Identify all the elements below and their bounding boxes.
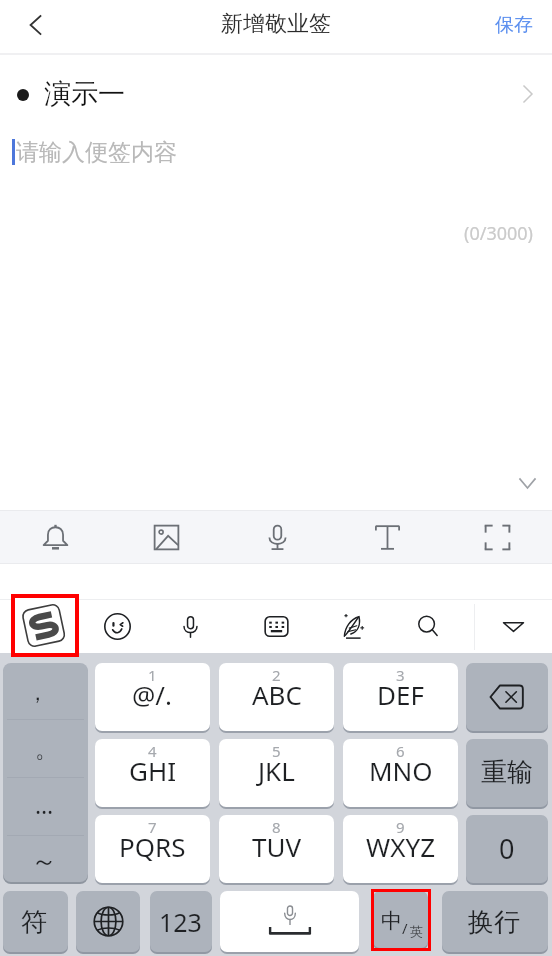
staticText: 演示一 bbox=[44, 77, 125, 111]
staticText: 8 bbox=[272, 817, 281, 837]
staticText: 3 bbox=[396, 665, 405, 685]
staticText: GHI bbox=[129, 753, 177, 788]
staticText: ， bbox=[27, 680, 48, 706]
staticText: DEF bbox=[377, 677, 424, 712]
button[interactable]: Switch language bbox=[76, 891, 140, 952]
button[interactable]: Space bbox=[220, 891, 359, 952]
staticText: ABC bbox=[252, 677, 302, 712]
staticText: 重输 bbox=[481, 756, 533, 789]
button[interactable]: 3 bbox=[343, 663, 458, 731]
button[interactable]: Reminder bbox=[0, 510, 111, 564]
button[interactable]: ， bbox=[3, 663, 88, 882]
button[interactable]: 1 bbox=[95, 663, 210, 731]
staticText: 2 bbox=[272, 665, 281, 685]
staticText: 新增敬业签 bbox=[221, 10, 331, 38]
staticText: 1 bbox=[148, 665, 157, 685]
button[interactable]: 中 bbox=[373, 891, 428, 948]
staticText: TUV bbox=[252, 829, 302, 864]
staticText: 0 bbox=[499, 830, 515, 867]
staticText: @/. bbox=[132, 677, 173, 712]
button[interactable]: Voice input bbox=[164, 600, 216, 653]
button[interactable]: Voice note bbox=[222, 510, 332, 564]
button[interactable]: 123 bbox=[150, 891, 212, 952]
staticText: PQRS bbox=[119, 829, 186, 864]
button[interactable]: 2 bbox=[219, 663, 334, 731]
button[interactable]: 5 bbox=[219, 739, 334, 807]
button[interactable]: 符 bbox=[3, 891, 68, 952]
button[interactable]: 重输 bbox=[466, 739, 548, 807]
button[interactable]: 6 bbox=[343, 739, 458, 807]
staticText: … bbox=[35, 789, 54, 820]
staticText: 符 bbox=[21, 906, 47, 939]
button[interactable]: Keyboard layout bbox=[250, 600, 302, 653]
button[interactable]: 4 bbox=[95, 739, 210, 807]
staticText: 换行 bbox=[468, 906, 520, 939]
staticText: 保存 bbox=[495, 13, 533, 37]
button[interactable]: 保存 bbox=[475, 0, 552, 55]
button[interactable]: Collapse editor bbox=[508, 466, 546, 504]
button[interactable]: Sogou input method bbox=[11, 594, 79, 657]
button[interactable]: Handwriting bbox=[326, 600, 378, 653]
staticText: WXYZ bbox=[366, 829, 436, 864]
staticText: 7 bbox=[148, 817, 157, 837]
staticText: 中 bbox=[381, 908, 402, 934]
button[interactable]: 0 bbox=[466, 815, 548, 883]
button[interactable]: Search bbox=[402, 600, 454, 653]
button[interactable]: Back bbox=[0, 0, 62, 55]
button[interactable]: Add image bbox=[111, 510, 222, 564]
button[interactable]: Hide keyboard bbox=[487, 600, 539, 653]
staticText: 英 bbox=[410, 923, 423, 939]
staticText: 6 bbox=[396, 741, 405, 761]
staticText: 9 bbox=[396, 817, 405, 837]
staticText: JKL bbox=[258, 753, 295, 788]
staticText: 4 bbox=[148, 741, 157, 761]
button[interactable]: Emoji bbox=[91, 600, 143, 653]
button[interactable]: 7 bbox=[95, 815, 210, 883]
button[interactable]: 8 bbox=[219, 815, 334, 883]
staticText: 5 bbox=[272, 741, 281, 761]
button[interactable]: 换行 bbox=[442, 891, 548, 952]
staticText: ～ bbox=[31, 845, 57, 878]
staticText: 。 bbox=[35, 735, 58, 764]
staticText: 123 bbox=[159, 905, 202, 939]
button[interactable]: Text format bbox=[332, 510, 442, 564]
staticText: / bbox=[402, 918, 408, 938]
staticText: (0/3000) bbox=[464, 221, 533, 246]
staticText: 请输入便签内容 bbox=[16, 138, 177, 167]
button[interactable]: Backspace bbox=[466, 663, 548, 731]
button[interactable]: 演示一 bbox=[0, 55, 552, 131]
button[interactable]: Full screen bbox=[442, 510, 552, 564]
staticText: MNO bbox=[369, 753, 433, 788]
button[interactable]: 9 bbox=[343, 815, 458, 883]
